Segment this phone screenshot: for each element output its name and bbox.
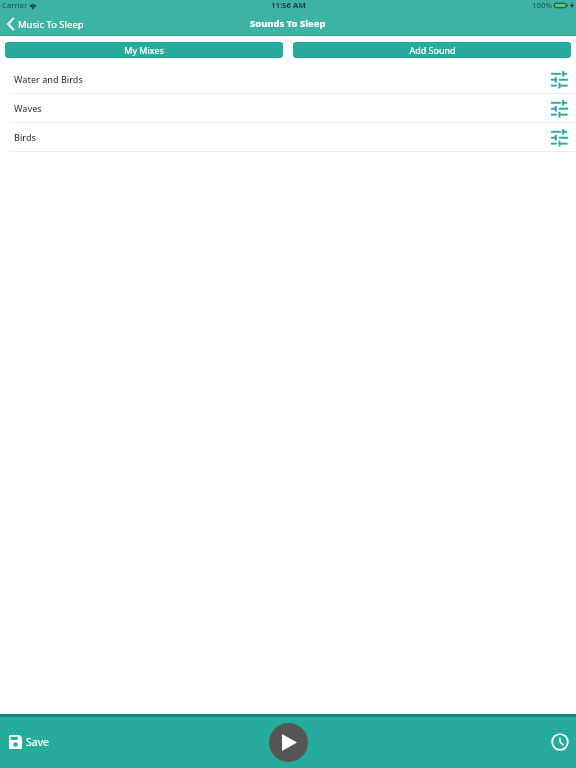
button[interactable]: Adjust levels (547, 124, 572, 150)
button[interactable]: Birds (0, 123, 576, 152)
button[interactable]: Waves (0, 94, 576, 123)
staticText: 11:56 AM (271, 0, 306, 11)
staticText: Sounds To Sleep (250, 17, 326, 30)
staticText: Save (26, 735, 49, 749)
button[interactable]: Music To Sleep (5, 14, 86, 34)
button[interactable]: Play (269, 723, 308, 762)
staticText: Carrier (2, 0, 28, 11)
staticText: My Mixes (124, 44, 164, 56)
staticText: Waves (14, 102, 42, 114)
button[interactable]: Water and Birds (0, 65, 576, 94)
button[interactable]: Adjust levels (547, 66, 572, 92)
staticText: Birds (14, 131, 36, 143)
staticText: Music To Sleep (18, 18, 84, 31)
button[interactable]: Save (5, 731, 53, 753)
button[interactable]: Add Sound (293, 42, 571, 58)
button[interactable]: My Mixes (5, 42, 283, 58)
staticText: Add Sound (409, 44, 456, 56)
button[interactable]: Sleep timer (550, 732, 569, 751)
staticText: Water and Birds (14, 73, 83, 85)
staticText: 100% (532, 0, 552, 11)
button[interactable]: Adjust levels (547, 95, 572, 121)
